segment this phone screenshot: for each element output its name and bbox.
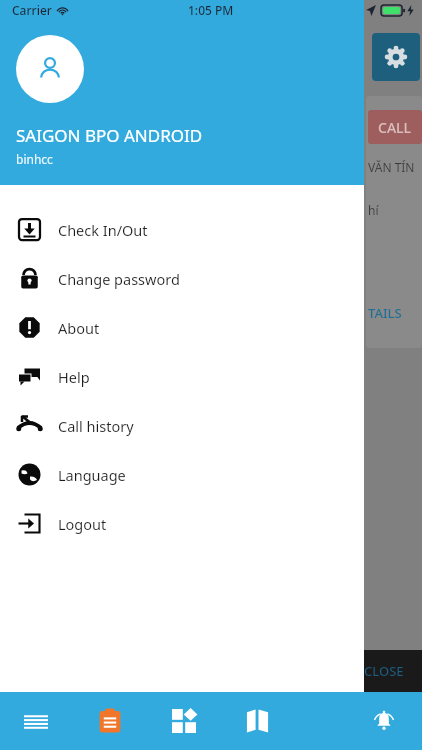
button[interactable]: Check In/Out [0,205,364,254]
staticText: binhcc [16,151,53,167]
staticText: Help [58,367,90,387]
staticText: Check In/Out [58,220,148,240]
button[interactable]: Tasks [90,701,130,741]
button[interactable]: Dashboard [164,701,204,741]
staticText: Carrier [12,2,52,18]
button[interactable]: Help [0,352,364,401]
button[interactable]: CLOSE [364,662,404,680]
staticText: Language [58,465,126,485]
button[interactable]: Settings [372,33,420,81]
staticText: Call history [58,416,134,436]
staticText: 1:05 PM [188,2,234,18]
staticText: VĂN TÍN [368,159,415,175]
button[interactable]: Change password [0,254,364,303]
button[interactable]: Notifications [364,701,404,741]
button[interactable]: Language [0,450,364,499]
button[interactable]: CALL [368,110,422,144]
button[interactable]: About [0,303,364,352]
button[interactable]: Map [238,701,278,741]
staticText: Change password [58,269,180,289]
staticText: Logout [58,514,107,534]
button[interactable]: TAILS [368,304,402,322]
button[interactable]: Call history [0,401,364,450]
staticText: hí [368,202,379,218]
staticText: SAIGON BPO ANDROID [16,124,203,147]
staticText: About [58,318,100,338]
button[interactable]: Logout [0,499,364,548]
button[interactable]: Menu [16,701,56,741]
staticText: CALL [378,118,412,137]
